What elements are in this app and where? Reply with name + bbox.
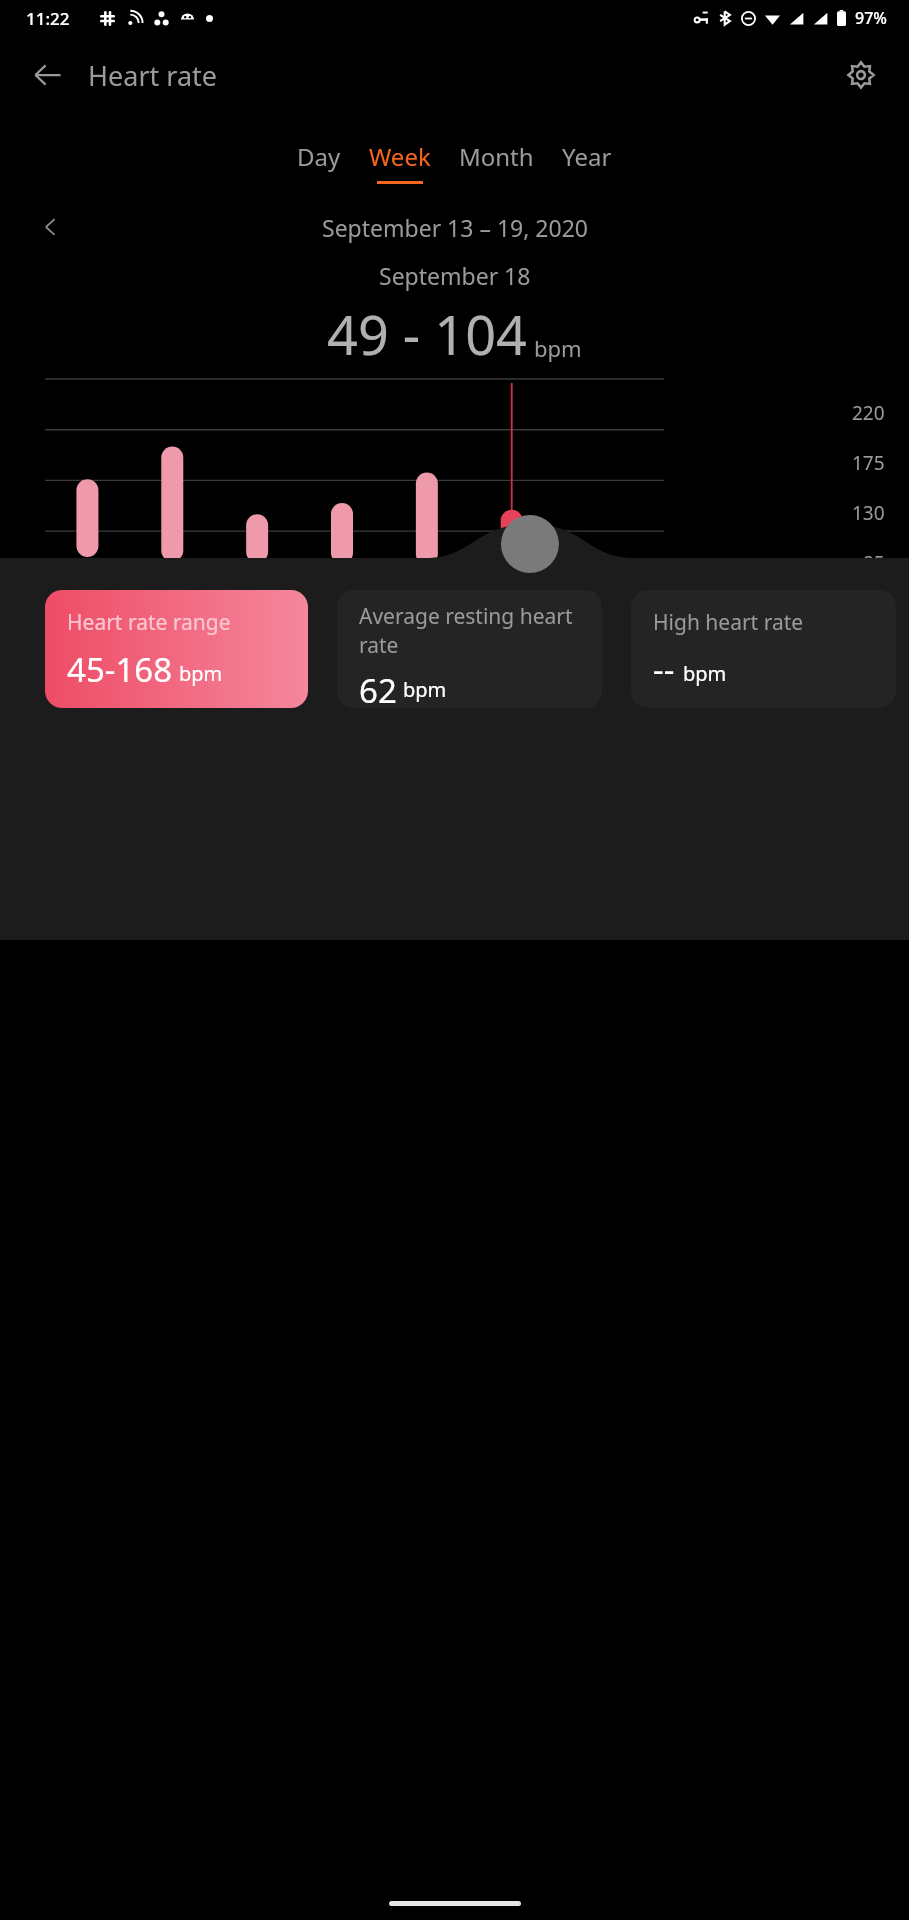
button[interactable]: Day bbox=[283, 136, 355, 188]
staticText: 11:22 bbox=[26, 7, 70, 30]
button[interactable]: Settings bbox=[833, 47, 889, 103]
staticText: 62 bbox=[359, 668, 397, 708]
button[interactable]: Previous week bbox=[30, 206, 72, 248]
button[interactable]: Back bbox=[20, 47, 76, 103]
staticText: 49 - 104 bbox=[327, 297, 527, 371]
staticText: bpm bbox=[403, 676, 447, 703]
button[interactable]: Month bbox=[445, 136, 548, 188]
staticText: 9/13 bbox=[35, 578, 75, 604]
button[interactable]: Heart rate range bbox=[45, 590, 308, 708]
staticText: bpm bbox=[683, 660, 727, 687]
staticText: Year bbox=[562, 140, 612, 173]
staticText: Thu bbox=[431, 610, 467, 637]
staticText: 97% bbox=[855, 7, 887, 29]
staticText: bpm bbox=[179, 660, 223, 687]
staticText: bpm bbox=[534, 333, 582, 363]
staticText: High heart rate bbox=[653, 608, 804, 637]
button[interactable]: Average resting heart rate bbox=[337, 590, 602, 708]
button[interactable]: High heart rate bbox=[631, 590, 896, 708]
staticText: Sun bbox=[37, 610, 73, 637]
staticText: September 18 bbox=[379, 260, 531, 291]
staticText: Fri bbox=[535, 579, 559, 606]
staticText: 130 bbox=[852, 500, 885, 526]
staticText: 220 bbox=[852, 400, 885, 426]
staticText: Day bbox=[297, 140, 341, 173]
staticText: Mon bbox=[132, 610, 175, 637]
staticText: September 13 – 19, 2020 bbox=[322, 212, 588, 243]
button[interactable]: Year bbox=[548, 136, 626, 188]
button[interactable]: Week bbox=[355, 136, 445, 188]
staticText: Average resting heart rate bbox=[359, 602, 592, 660]
staticText: Month bbox=[459, 140, 534, 173]
staticText: 45-168 bbox=[67, 647, 173, 692]
staticText: -- bbox=[653, 647, 675, 692]
staticText: Heart rate bbox=[88, 57, 218, 94]
staticText: Wed bbox=[330, 610, 372, 637]
staticText: Sat bbox=[630, 610, 660, 637]
staticText: 85 bbox=[863, 550, 885, 576]
staticText: Heart rate range bbox=[67, 608, 231, 637]
staticText: 175 bbox=[852, 450, 885, 476]
staticText: Week bbox=[369, 140, 431, 173]
